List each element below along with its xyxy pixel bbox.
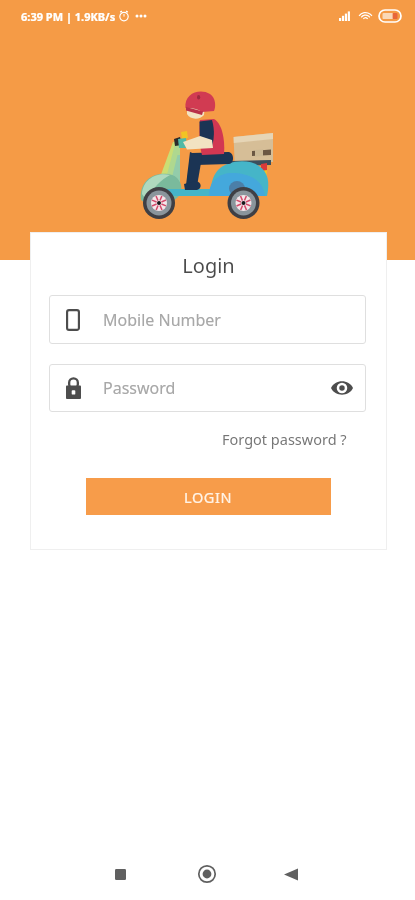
button[interactable]: Recent apps — [98, 852, 142, 896]
staticText: 6:39 PM | 1.9KB/s — [21, 9, 116, 24]
staticText: Login — [30, 252, 387, 279]
staticText: Password — [103, 377, 176, 399]
staticText: Mobile Number — [103, 309, 221, 331]
button[interactable]: Show password — [322, 368, 362, 408]
button[interactable]: Password — [49, 364, 366, 412]
staticText: Forgot password ? — [222, 429, 347, 449]
button[interactable]: Forgot password ? — [216, 426, 353, 452]
button[interactable]: Back — [269, 852, 313, 896]
staticText: LOGIN — [184, 487, 233, 507]
button[interactable]: LOGIN — [86, 478, 331, 515]
button[interactable]: Home — [185, 852, 229, 896]
button[interactable]: Mobile Number — [49, 295, 366, 344]
